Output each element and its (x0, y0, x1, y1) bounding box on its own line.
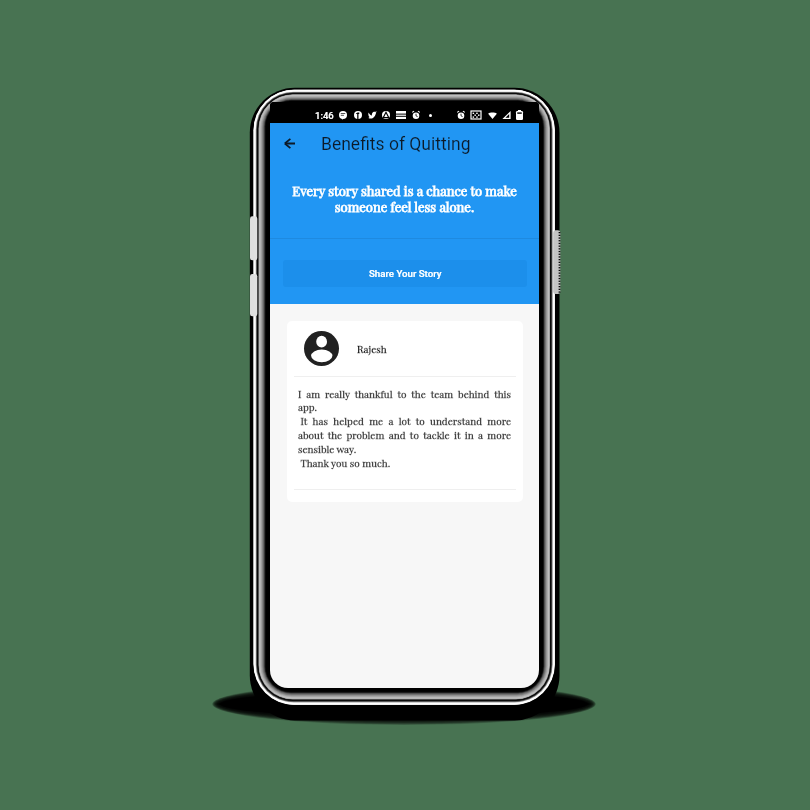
staticText: Every story shared is a chance to make s… (282, 182, 527, 215)
staticText: Benefits of Quitting (321, 134, 471, 155)
staticText: 1:46 (315, 110, 334, 121)
button[interactable]: Rajesh (287, 321, 523, 502)
staticText: I am really thankful to the team behind … (298, 387, 511, 469)
button[interactable]: Share Your Story (283, 260, 527, 287)
staticText: Rajesh (357, 342, 387, 355)
button[interactable]: Back (270, 123, 312, 165)
staticText: Share Your Story (369, 268, 442, 279)
